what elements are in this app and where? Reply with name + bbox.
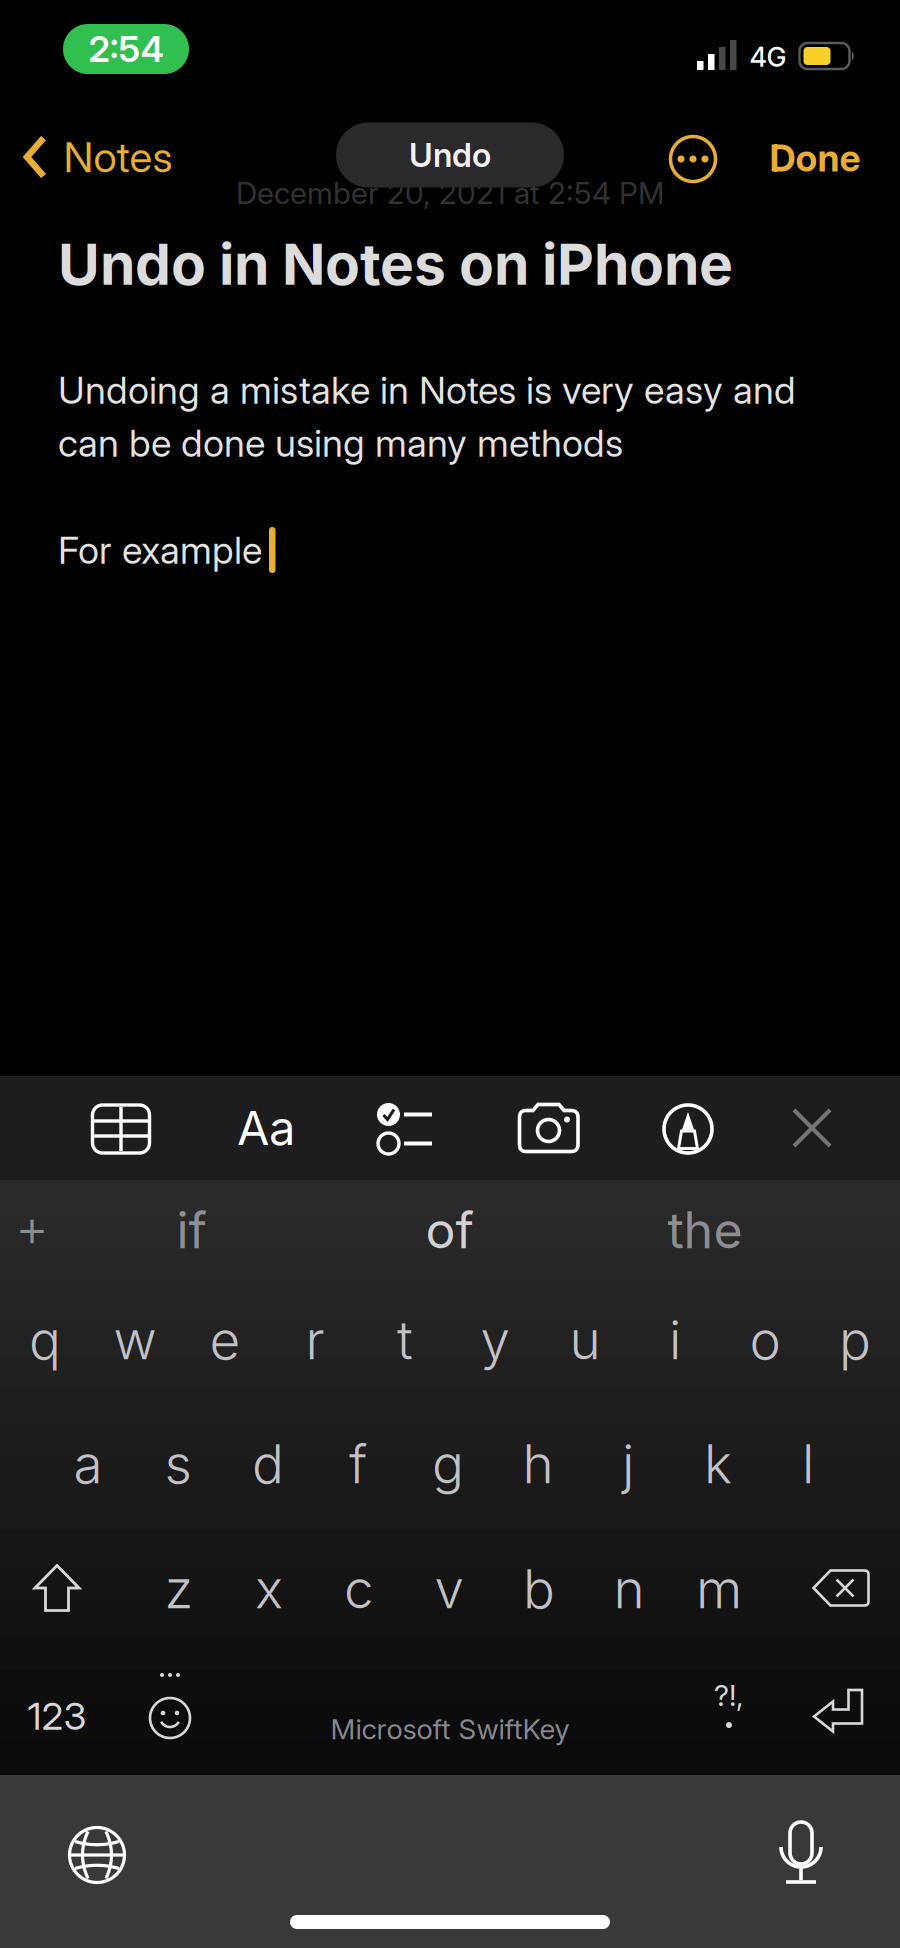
staticText: d	[252, 1432, 284, 1496]
staticText: e	[209, 1308, 240, 1372]
button[interactable]: Markup	[663, 1104, 713, 1154]
staticText: w	[113, 1308, 156, 1372]
staticText: of	[425, 1200, 474, 1260]
staticText: 4G	[749, 41, 786, 73]
staticText: x	[255, 1557, 283, 1621]
staticText: l	[802, 1432, 814, 1496]
button[interactable]: z	[134, 1539, 224, 1639]
button[interactable]: e	[180, 1290, 270, 1390]
staticText: a	[73, 1432, 102, 1496]
button[interactable]: x	[224, 1539, 314, 1639]
button[interactable]: y	[450, 1290, 540, 1390]
button[interactable]: s	[133, 1414, 223, 1514]
staticText: h	[522, 1432, 553, 1496]
staticText: December 20, 2021 at 2:54 PM	[236, 175, 664, 211]
staticText: q	[29, 1308, 61, 1372]
button[interactable]: More	[668, 134, 718, 184]
button[interactable]: of	[350, 1199, 550, 1261]
button[interactable]: l	[763, 1414, 853, 1514]
staticText: u	[569, 1308, 600, 1372]
staticText: 2:54	[88, 27, 163, 71]
button[interactable]: m	[674, 1539, 764, 1639]
button[interactable]: t	[360, 1290, 450, 1390]
staticText: k	[704, 1432, 732, 1496]
staticText: Undo in Notes on iPhone	[58, 229, 733, 298]
button[interactable]: Add word	[15, 1195, 49, 1258]
staticText: r	[305, 1308, 324, 1372]
button[interactable]: w	[90, 1290, 180, 1390]
button[interactable]: Undo	[336, 122, 564, 187]
staticText: z	[164, 1557, 193, 1621]
button[interactable]: Notes	[23, 132, 172, 182]
button[interactable]: f	[313, 1414, 403, 1514]
staticText: Notes	[63, 132, 172, 182]
staticText: b	[523, 1557, 555, 1621]
button[interactable]: a	[43, 1414, 133, 1514]
button[interactable]: Dictation	[780, 1821, 822, 1885]
staticText: s	[164, 1432, 191, 1496]
button[interactable]: Numbers	[12, 1681, 102, 1751]
staticText: y	[480, 1308, 509, 1372]
button[interactable]: Insert table	[92, 1105, 149, 1153]
staticText: t	[397, 1308, 413, 1372]
staticText: can be done using many methods	[58, 420, 623, 466]
staticText: the	[667, 1200, 742, 1260]
staticText: Aa	[237, 1100, 295, 1156]
staticText: v	[434, 1557, 463, 1621]
button[interactable]: d	[223, 1414, 313, 1514]
button[interactable]: k	[673, 1414, 763, 1514]
button[interactable]: Switch keyboard	[69, 1827, 125, 1883]
staticText: if	[176, 1200, 207, 1260]
staticText: 123	[27, 1693, 86, 1739]
button[interactable]: Shift	[34, 1564, 80, 1611]
staticText: c	[344, 1557, 374, 1621]
button[interactable]: b	[494, 1539, 584, 1639]
staticText: f	[349, 1432, 367, 1496]
button[interactable]: Insert photo	[519, 1103, 579, 1152]
button[interactable]: j	[583, 1414, 673, 1514]
button[interactable]: u	[540, 1290, 630, 1390]
button[interactable]: h	[493, 1414, 583, 1514]
staticText: j	[622, 1432, 634, 1496]
button[interactable]: Format text	[237, 1100, 295, 1156]
button[interactable]: Checklist	[377, 1103, 433, 1155]
button[interactable]: c	[314, 1539, 404, 1639]
staticText: p	[839, 1308, 871, 1372]
staticText: i	[669, 1308, 681, 1372]
button[interactable]: Punctuation	[714, 1678, 744, 1728]
button[interactable]: v	[404, 1539, 494, 1639]
staticText: o	[749, 1308, 780, 1372]
staticText: Microsoft SwiftKey	[330, 1712, 569, 1746]
button[interactable]: Space	[240, 1689, 660, 1769]
button[interactable]: Emoji	[149, 1673, 191, 1743]
button[interactable]: r	[270, 1290, 360, 1390]
button[interactable]: p	[810, 1290, 900, 1390]
staticText: Undo	[409, 135, 491, 175]
staticText: Done	[769, 136, 860, 180]
button[interactable]: Delete	[812, 1569, 869, 1606]
button[interactable]: q	[0, 1290, 90, 1390]
staticText: For example	[58, 527, 262, 573]
button[interactable]: if	[92, 1199, 292, 1261]
button[interactable]: n	[584, 1539, 674, 1639]
staticText: +	[15, 1195, 49, 1258]
button[interactable]: Done	[769, 136, 860, 180]
staticText: Undoing a mistake in Notes is very easy …	[58, 367, 796, 413]
button[interactable]: Return to call	[63, 24, 189, 74]
staticText: m	[696, 1557, 742, 1621]
button[interactable]: i	[630, 1290, 720, 1390]
staticText: n	[613, 1557, 644, 1621]
button[interactable]: g	[403, 1414, 493, 1514]
staticText: g	[432, 1432, 464, 1496]
button[interactable]: the	[605, 1199, 805, 1261]
staticText: ?!,	[714, 1678, 744, 1713]
button[interactable]: o	[720, 1290, 810, 1390]
button[interactable]: Close toolbar	[792, 1108, 832, 1148]
button[interactable]: Return	[813, 1689, 863, 1733]
